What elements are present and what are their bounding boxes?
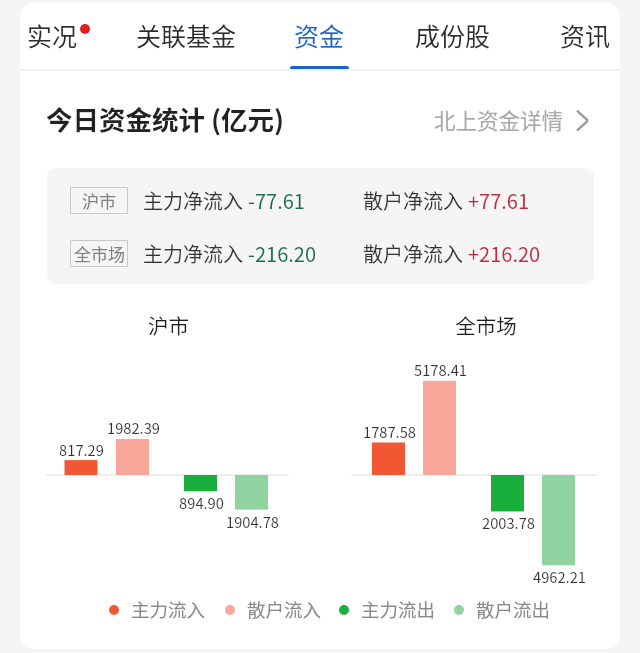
staticText: 今日资金统计 (亿元) bbox=[46, 99, 285, 137]
staticText: 沪市 bbox=[148, 310, 189, 340]
staticText: 资讯 bbox=[560, 17, 611, 53]
staticText: 4962.21 bbox=[533, 566, 586, 587]
button[interactable]: 主力流入 bbox=[109, 596, 206, 623]
staticText: 5178.41 bbox=[414, 359, 467, 380]
staticText: -216.20 bbox=[248, 239, 316, 268]
staticText: 散户净流入 bbox=[363, 239, 468, 268]
staticText: 2003.78 bbox=[482, 512, 535, 533]
staticText: 北上资金详情 bbox=[434, 104, 564, 135]
staticText: 成份股 bbox=[415, 17, 491, 53]
staticText: +216.20 bbox=[468, 239, 541, 268]
button[interactable]: 实况 bbox=[8, 3, 96, 67]
staticText: 资金 bbox=[294, 17, 345, 53]
button[interactable]: 资金 bbox=[272, 3, 366, 67]
staticText: 关联基金 bbox=[136, 17, 237, 53]
staticText: -77.61 bbox=[248, 186, 305, 215]
staticText: 全市场 bbox=[74, 241, 125, 266]
staticText: 主力净流入 bbox=[143, 186, 248, 215]
button[interactable]: 资讯 bbox=[537, 3, 633, 67]
staticText: 沪市 bbox=[82, 188, 116, 213]
button[interactable]: 成份股 bbox=[393, 3, 512, 67]
button[interactable]: 主力流出 bbox=[339, 596, 436, 623]
staticText: 实况 bbox=[27, 17, 78, 53]
other: 北上资金详情 bbox=[573, 106, 591, 134]
staticText: 主力流出 bbox=[361, 596, 436, 623]
staticText: 散户流出 bbox=[476, 596, 551, 623]
staticText: 817.29 bbox=[59, 439, 104, 460]
staticText: 主力净流入 bbox=[143, 239, 248, 268]
button[interactable]: 散户流出 bbox=[454, 596, 551, 623]
staticText: 散户流入 bbox=[247, 596, 322, 623]
staticText: +77.61 bbox=[468, 186, 530, 215]
staticText: 894.90 bbox=[179, 492, 224, 513]
button[interactable]: 散户流入 bbox=[225, 596, 322, 623]
staticText: 1982.39 bbox=[107, 417, 160, 438]
button[interactable]: 关联基金 bbox=[129, 3, 244, 67]
button[interactable]: 北上资金详情 bbox=[434, 104, 591, 135]
staticText: 主力流入 bbox=[131, 596, 206, 623]
staticText: 1787.58 bbox=[363, 421, 416, 442]
staticText: 1904.78 bbox=[226, 511, 279, 532]
staticText: 全市场 bbox=[455, 310, 517, 340]
staticText: 散户净流入 bbox=[363, 186, 468, 215]
